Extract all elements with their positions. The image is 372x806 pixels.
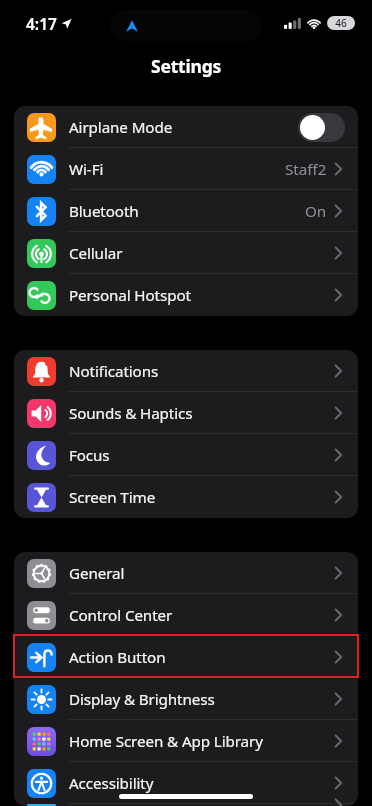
staticText: Cellular [69,243,123,264]
staticText: Sounds & Haptics [69,403,193,424]
button[interactable]: Screen Time [14,476,358,518]
staticText: Action Button [69,647,166,668]
button[interactable]: Control Center [14,594,358,636]
staticText: Wi-Fi [69,159,104,180]
staticText: Settings [151,54,222,78]
button[interactable]: Home Screen & App Library [14,720,358,762]
staticText: Bluetooth [69,201,139,222]
staticText: 46 [335,16,347,30]
button[interactable]: Airplane Mode toggle, off [298,113,345,142]
staticText: Staff2 [285,159,327,180]
staticText: 4:17 [26,13,57,34]
button[interactable]: Personal Hotspot [14,274,358,316]
staticText: Airplane Mode [69,117,173,138]
button[interactable]: Display & Brightness [14,678,358,720]
staticText: Screen Time [69,487,156,508]
button[interactable]: Focus [14,434,358,476]
staticText: On [305,201,327,222]
staticText: Personal Hotspot [69,285,191,306]
button[interactable]: Accessibility [14,762,358,804]
button[interactable]: Siri & Search [14,804,358,806]
button[interactable]: Sounds & Haptics [14,392,358,434]
button[interactable]: Notifications [14,350,358,392]
staticText: Display & Brightness [69,689,215,710]
button[interactable]: Wi-Fi [14,148,358,190]
button[interactable]: Airplane Mode [14,106,358,148]
button[interactable]: Cellular [14,232,358,274]
staticText: Control Center [69,605,173,626]
staticText: Accessibility [69,773,154,794]
staticText: General [69,563,125,584]
button[interactable]: General [14,552,358,594]
staticText: Home Screen & App Library [69,731,263,752]
staticText: Focus [69,445,110,466]
button[interactable]: Bluetooth [14,190,358,232]
button[interactable]: Action Button [14,636,358,678]
staticText: Notifications [69,361,159,382]
